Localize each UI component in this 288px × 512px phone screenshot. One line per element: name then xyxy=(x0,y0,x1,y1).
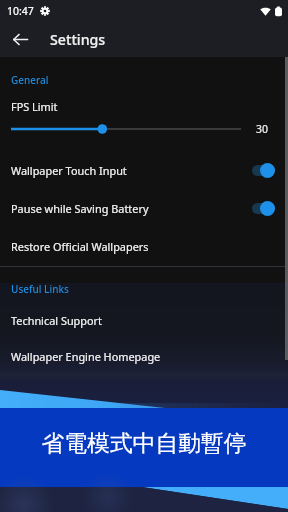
button[interactable]: Technical Support xyxy=(0,301,288,339)
staticText: Wallpaper Touch Input xyxy=(11,163,127,178)
button[interactable]: Pause while Saving Battery xyxy=(0,189,288,227)
button[interactable]: 30 xyxy=(0,117,288,141)
staticText: Technical Support xyxy=(11,313,103,328)
staticText: Settings xyxy=(50,30,106,49)
staticText: Pause while Saving Battery xyxy=(11,201,149,216)
button[interactable]: Wallpaper Touch Input xyxy=(0,151,288,189)
staticText: Wallpaper Engine Homepage xyxy=(11,349,161,364)
staticText: 30 xyxy=(256,122,269,136)
staticText: 10:47 xyxy=(7,4,34,18)
button[interactable]: FPS Limit xyxy=(0,96,288,116)
button[interactable]: Back xyxy=(3,22,37,56)
button[interactable]: Restore Official Wallpapers xyxy=(0,227,288,265)
staticText: General xyxy=(11,73,49,87)
staticText: FPS Limit xyxy=(11,99,58,114)
button[interactable]: Wallpaper Engine Homepage xyxy=(0,337,288,375)
staticText: 省電模式中自動暫停 xyxy=(41,429,247,458)
staticText: Useful Links xyxy=(11,282,69,296)
staticText: Restore Official Wallpapers xyxy=(11,239,149,254)
